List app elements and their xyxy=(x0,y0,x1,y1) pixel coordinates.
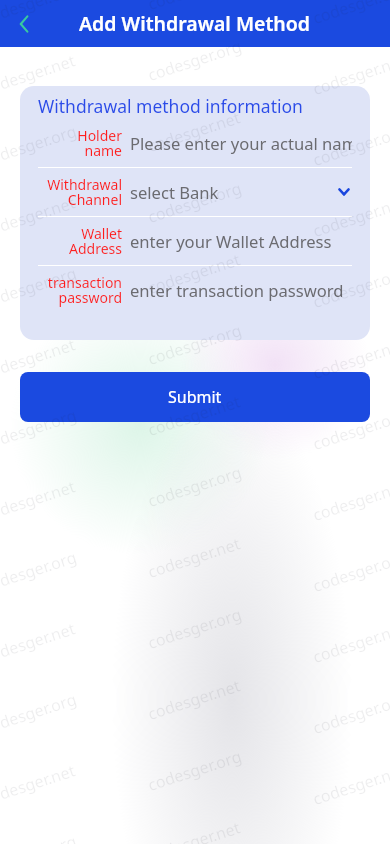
staticText: Please enter your actual name xyxy=(130,132,352,155)
staticText: Withdrawal method information xyxy=(38,94,303,118)
staticText: Submit xyxy=(168,386,222,408)
staticText: Withdrawal Channel xyxy=(38,175,122,209)
button[interactable]: Holder name xyxy=(38,119,352,167)
staticText: enter your Wallet Address xyxy=(130,230,352,253)
button[interactable]: Submit xyxy=(20,372,370,422)
staticText: Add Withdrawal Method xyxy=(79,10,311,37)
staticText: select Bank xyxy=(130,181,336,204)
staticText: Holder name xyxy=(38,126,122,160)
button[interactable]: Back xyxy=(0,0,48,47)
button[interactable]: Wallet Address xyxy=(38,217,352,265)
button[interactable]: Withdrawal Channel xyxy=(38,168,352,216)
staticText: Wallet Address xyxy=(38,224,122,258)
staticText: enter transaction password xyxy=(130,279,352,302)
staticText: transaction password xyxy=(38,273,122,307)
button[interactable]: transaction password xyxy=(38,266,352,314)
